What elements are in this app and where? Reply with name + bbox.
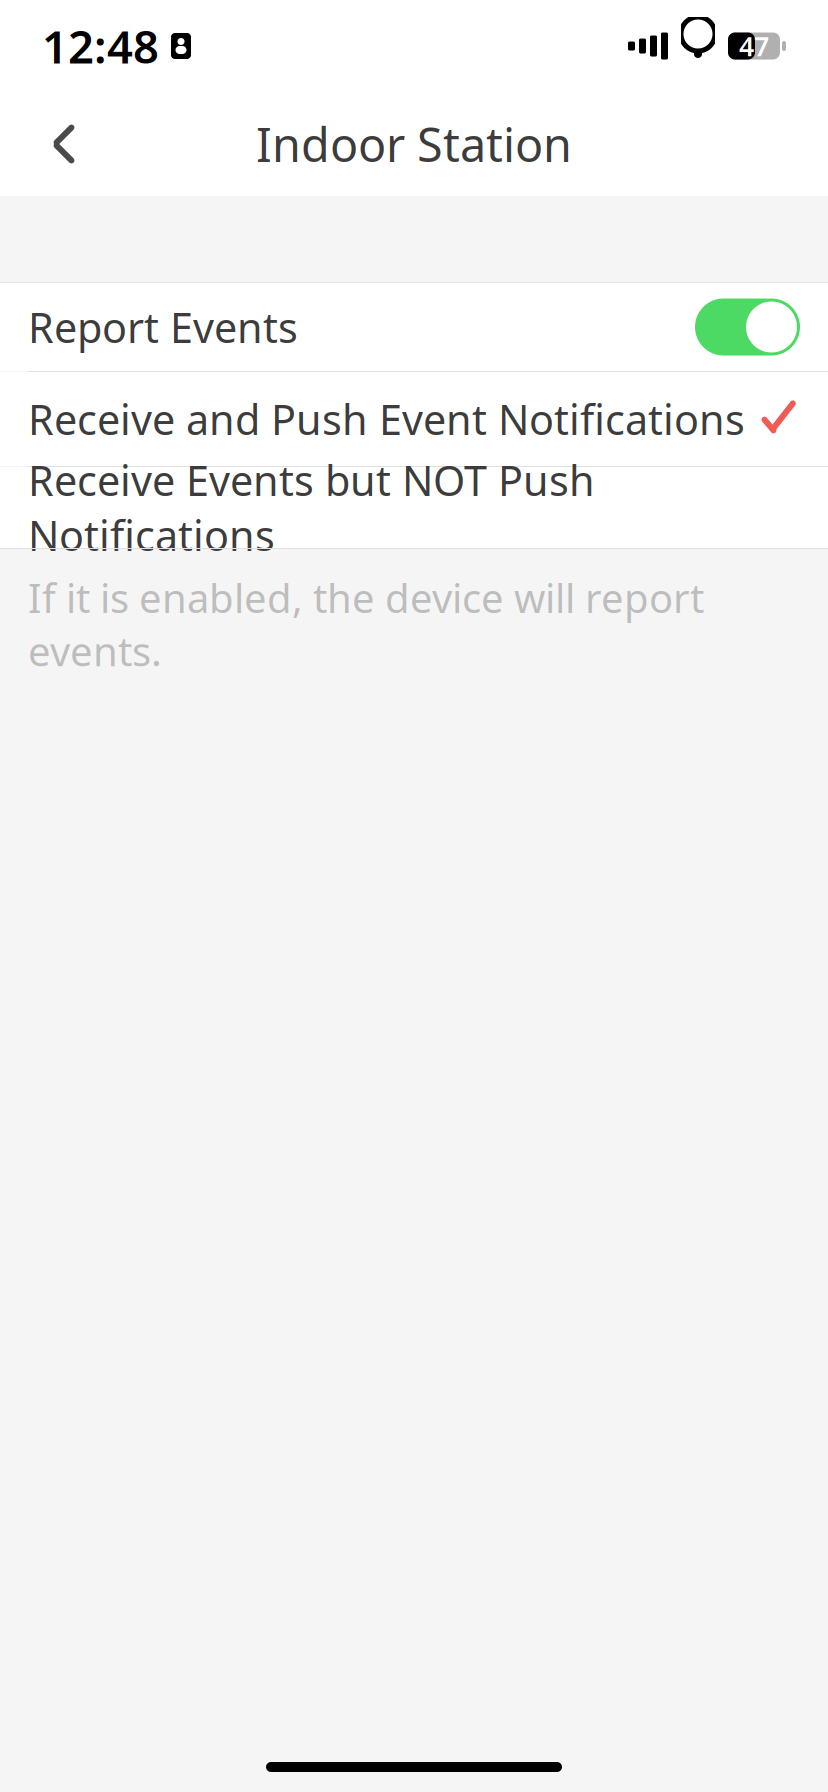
staticText: If it is enabled, the device will report… — [28, 571, 704, 677]
staticText: Report Events — [28, 300, 298, 354]
staticText: Receive Events but NOT Push Notification… — [28, 453, 595, 562]
button[interactable]: Report Events — [0, 283, 828, 371]
staticText: 12:48 — [42, 16, 159, 76]
staticText: 47 — [739, 28, 769, 64]
button[interactable]: Receive and Push Event Notifications — [0, 372, 828, 466]
staticText: Indoor Station — [256, 113, 572, 175]
button[interactable]: Receive Events but NOT Push Notification… — [0, 467, 828, 548]
staticText: Receive and Push Event Notifications — [28, 392, 745, 446]
button[interactable]: Back — [24, 106, 104, 182]
